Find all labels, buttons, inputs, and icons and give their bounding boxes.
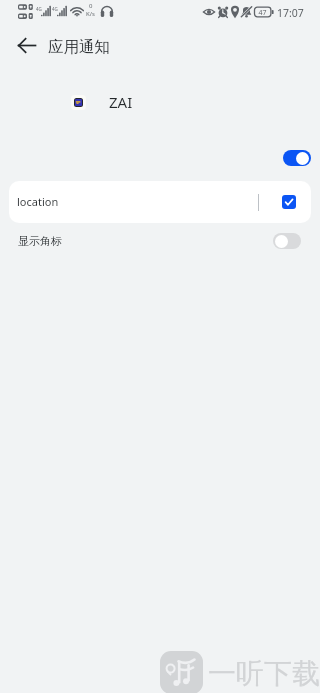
- staticText: 应用通知: [48, 37, 110, 57]
- staticText: 显示角标: [18, 234, 62, 248]
- staticText: ZAI: [109, 92, 133, 112]
- staticText: K/s: [86, 10, 95, 18]
- button[interactable]: location: [9, 181, 311, 223]
- staticText: 4G: [52, 6, 58, 12]
- staticText: 一听下载: [208, 656, 320, 691]
- button[interactable]: 显示角标: [0, 228, 320, 254]
- staticText: location: [17, 194, 59, 209]
- button[interactable]: Back: [8, 26, 46, 64]
- button[interactable]: location enabled: [282, 195, 296, 209]
- staticText: 4G: [36, 6, 42, 12]
- button[interactable]: Allow notifications: [283, 150, 311, 166]
- staticText: 17:07: [277, 6, 304, 20]
- staticText: 47: [257, 8, 268, 18]
- button[interactable]: 显示角标: [273, 233, 301, 249]
- staticText: 0: [89, 2, 93, 10]
